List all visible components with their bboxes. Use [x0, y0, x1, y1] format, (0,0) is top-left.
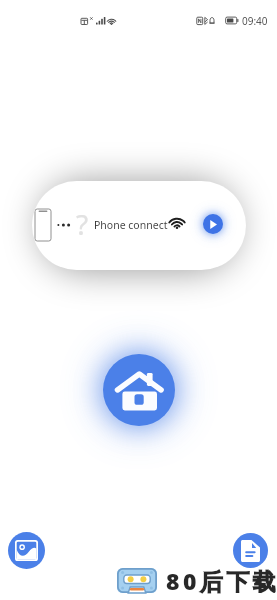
button[interactable]: ? — [32, 181, 246, 270]
staticText: ? — [76, 205, 89, 243]
button[interactable]: Gallery — [8, 532, 45, 569]
staticText: 80后下载 — [166, 565, 277, 596]
button[interactable]: Play — [203, 214, 223, 234]
button[interactable]: Documents — [233, 533, 268, 568]
staticText: Phone connect — [94, 218, 168, 232]
staticText: 09:40 — [242, 14, 268, 28]
button[interactable]: Home — [103, 354, 175, 426]
